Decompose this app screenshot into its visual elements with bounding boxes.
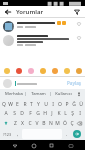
staticText: J bbox=[51, 110, 53, 117]
button[interactable]: H bbox=[41, 108, 48, 118]
staticText: P bbox=[65, 101, 69, 108]
staticText: M bbox=[55, 120, 60, 127]
button[interactable]: Emoji bbox=[63, 67, 70, 74]
button[interactable]: Kullanıcı bbox=[51, 89, 75, 98]
button[interactable]: E bbox=[14, 98, 21, 108]
button[interactable]: Recents bbox=[47, 141, 56, 150]
button[interactable]: Like bbox=[76, 35, 82, 41]
button[interactable]: M bbox=[54, 118, 61, 128]
staticText: K bbox=[57, 110, 61, 117]
staticText: W bbox=[8, 101, 13, 108]
button[interactable]: Like bbox=[0, 18, 85, 32]
staticText: E bbox=[16, 101, 19, 108]
button[interactable]: Ç bbox=[68, 118, 75, 128]
button[interactable]: . bbox=[63, 129, 70, 139]
staticText: I bbox=[79, 110, 81, 117]
staticText: A bbox=[4, 110, 8, 117]
button[interactable]: Y bbox=[35, 98, 42, 108]
button[interactable]: Z bbox=[11, 118, 19, 128]
button[interactable]: Ü bbox=[77, 98, 84, 108]
button[interactable]: T bbox=[28, 98, 35, 108]
button[interactable]: Emoji bbox=[27, 67, 34, 74]
staticText: V bbox=[35, 120, 39, 127]
button[interactable]: R bbox=[21, 98, 28, 108]
button[interactable]: X bbox=[19, 118, 26, 128]
button[interactable]: S bbox=[10, 108, 18, 118]
staticText: S bbox=[13, 110, 16, 117]
staticText: U bbox=[44, 101, 48, 108]
button[interactable]: Back bbox=[10, 141, 19, 150]
button[interactable]: Tamam bbox=[26, 89, 50, 98]
button[interactable]: Emoji bbox=[15, 67, 22, 74]
staticText: . bbox=[66, 131, 68, 137]
staticText: Q bbox=[2, 101, 6, 108]
button[interactable]: Paylaş bbox=[66, 80, 82, 86]
button[interactable]: ?123 bbox=[1, 129, 14, 139]
button[interactable]: Like bbox=[0, 32, 85, 46]
staticText: I bbox=[52, 101, 54, 108]
staticText: B bbox=[42, 120, 46, 127]
button[interactable]: Enter bbox=[70, 129, 84, 139]
button[interactable]: Emoji bbox=[39, 67, 46, 74]
button[interactable]: Backspace bbox=[75, 118, 84, 128]
button[interactable]: I bbox=[49, 98, 56, 108]
button[interactable]: I bbox=[76, 108, 83, 118]
button[interactable]: P bbox=[63, 98, 70, 108]
button[interactable]: F bbox=[26, 108, 34, 118]
staticText: Yorumlar bbox=[16, 8, 44, 16]
button[interactable]: J bbox=[48, 108, 55, 118]
staticText: N bbox=[49, 120, 53, 127]
button[interactable]: L bbox=[62, 108, 69, 118]
button[interactable]: , bbox=[14, 129, 21, 139]
button[interactable]: G bbox=[34, 108, 41, 118]
button[interactable]: V bbox=[33, 118, 40, 128]
button[interactable]: Keyboard bbox=[66, 141, 75, 150]
staticText: X bbox=[21, 120, 24, 127]
button[interactable]: K bbox=[55, 108, 62, 118]
button[interactable]: U bbox=[42, 98, 49, 108]
button[interactable]: Emoji bbox=[3, 67, 10, 74]
staticText: Paylaş bbox=[67, 80, 81, 86]
button[interactable]: D bbox=[18, 108, 26, 118]
button[interactable]: A bbox=[2, 108, 10, 118]
button[interactable]: Merhaba bbox=[2, 89, 25, 98]
staticText: Ğ bbox=[72, 101, 76, 108]
staticText: Ü bbox=[79, 101, 83, 108]
button[interactable]: Emoji bbox=[51, 67, 58, 74]
button[interactable]: Back bbox=[3, 7, 13, 17]
staticText: F bbox=[29, 110, 32, 117]
staticText: Ö bbox=[63, 120, 67, 127]
button[interactable]: O bbox=[56, 98, 63, 108]
staticText: D bbox=[20, 110, 24, 117]
button[interactable]: Emoji bbox=[75, 67, 82, 74]
button[interactable]: Like bbox=[76, 21, 82, 27]
staticText: ?123 bbox=[3, 132, 12, 137]
staticText: H bbox=[43, 110, 47, 117]
staticText: Tamam bbox=[31, 91, 46, 97]
button[interactable]: W bbox=[7, 98, 14, 108]
button[interactable]: N bbox=[47, 118, 54, 128]
button[interactable]: C bbox=[26, 118, 33, 128]
button[interactable]: Ğ bbox=[70, 98, 77, 108]
button[interactable]: Q bbox=[1, 98, 7, 108]
button[interactable] bbox=[15, 81, 66, 86]
staticText: G bbox=[36, 110, 40, 117]
button[interactable]: Shift bbox=[1, 118, 11, 128]
button[interactable]: Ö bbox=[61, 118, 68, 128]
button[interactable]: Filter bbox=[72, 7, 82, 17]
staticText: C bbox=[28, 120, 32, 127]
button[interactable]: Home bbox=[29, 141, 38, 150]
button[interactable]: Ş bbox=[69, 108, 76, 118]
staticText: T bbox=[30, 101, 33, 108]
button[interactable]: B bbox=[40, 118, 47, 128]
button[interactable]: Voice input bbox=[75, 89, 83, 98]
